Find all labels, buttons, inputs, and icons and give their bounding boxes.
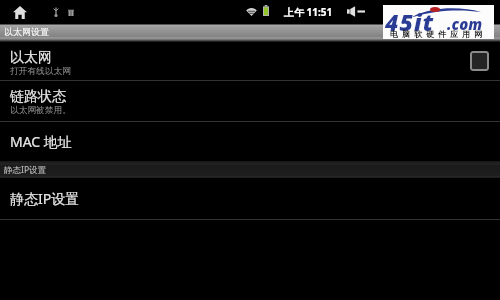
staticText: 静态IP设置	[4, 164, 47, 176]
staticText: 以太网	[10, 49, 52, 67]
staticText: 以太网被禁用。	[10, 105, 71, 116]
staticText: 电脑软硬件应用网	[388, 29, 484, 39]
staticText: 链路状态	[10, 88, 66, 106]
staticText: 45it	[385, 6, 435, 37]
staticText: 打开有线以太网	[10, 66, 71, 77]
button[interactable]: 启用以太网	[470, 51, 489, 71]
staticText: 上午 11:51	[284, 5, 333, 19]
staticText: .com	[447, 14, 483, 34]
button[interactable]: 主页	[13, 5, 27, 19]
button[interactable]: 链路状态	[0, 81, 500, 121]
button[interactable]: 以太网	[0, 42, 500, 81]
button[interactable]: MAC 地址	[0, 122, 500, 161]
staticText: MAC 地址	[10, 132, 72, 151]
staticText: 以太网设置	[4, 26, 49, 37]
button[interactable]: 静态IP设置	[0, 178, 500, 219]
staticText: 静态IP设置	[10, 189, 80, 208]
